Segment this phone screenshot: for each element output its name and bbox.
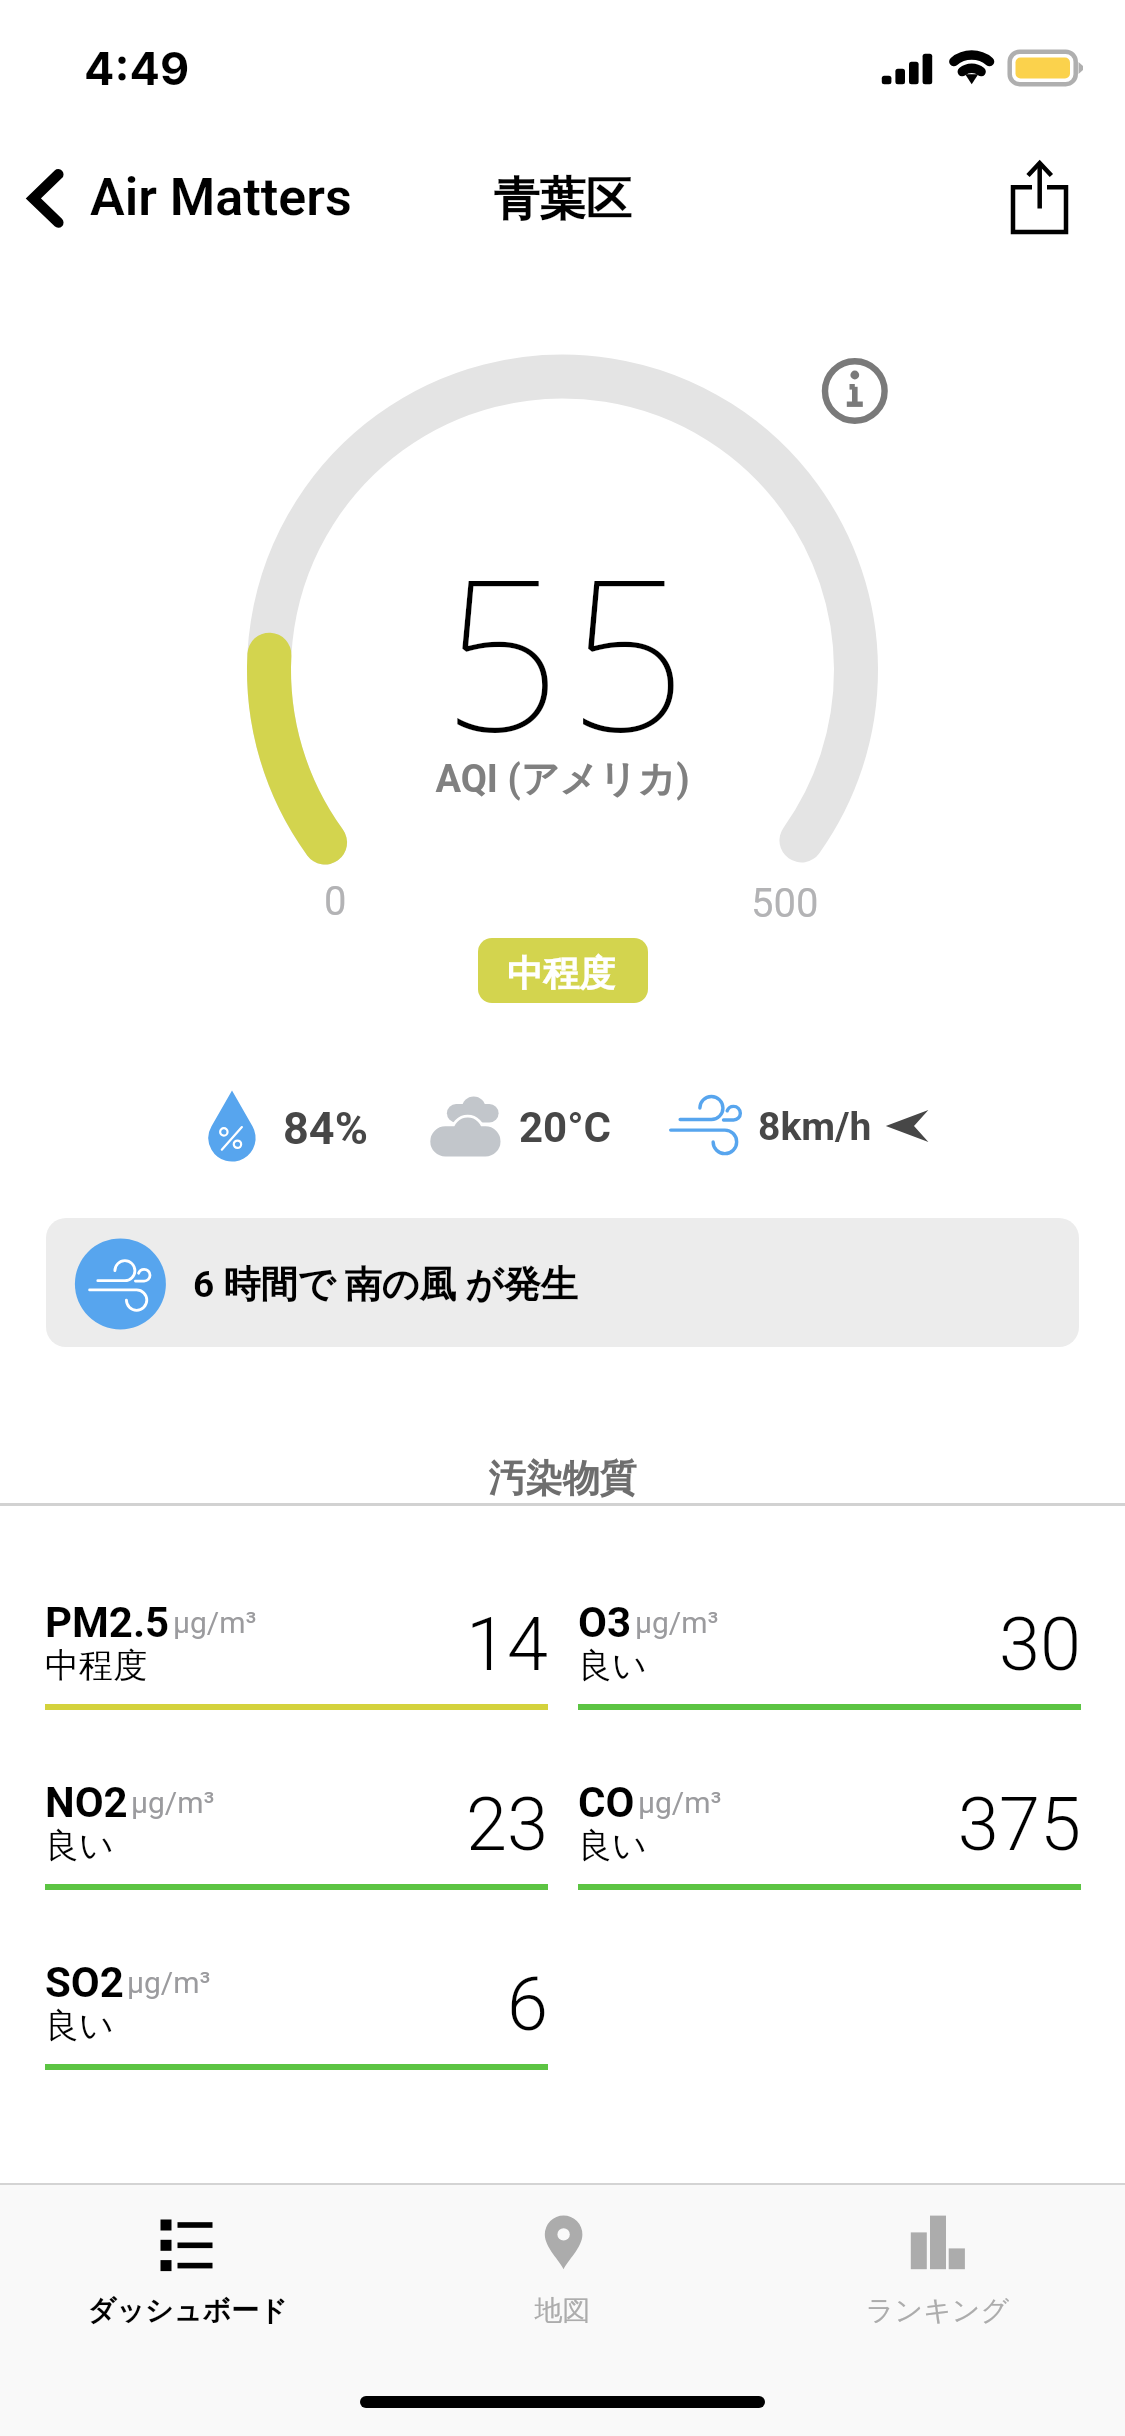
staticText: 地図: [375, 2293, 750, 2328]
button[interactable]: ダッシュボード: [0, 2190, 375, 2350]
staticText: µg/m³: [635, 1605, 719, 1640]
button[interactable]: NO2: [45, 1780, 548, 1896]
staticText: CO: [578, 1778, 635, 1827]
staticText: ダッシュボード: [0, 2293, 375, 2328]
staticText: 8km/h: [758, 1104, 872, 1150]
staticText: 23: [45, 1781, 548, 1868]
staticText: 30: [578, 1601, 1081, 1688]
button[interactable]: Share: [990, 140, 1100, 255]
staticText: 55: [5, 507, 1125, 793]
staticText: 4:49: [84, 41, 190, 95]
button[interactable]: CO: [578, 1780, 1081, 1896]
staticText: PM2.5: [45, 1598, 170, 1647]
staticText: 良い: [578, 1824, 647, 1867]
staticText: ランキング: [750, 2293, 1125, 2328]
button[interactable]: Information: [810, 345, 902, 437]
staticText: 良い: [578, 1644, 647, 1687]
staticText: 84%: [283, 1102, 368, 1155]
button[interactable]: 6 時間で 南の風 が発生: [46, 1218, 1079, 1347]
button[interactable]: O3: [578, 1600, 1081, 1716]
staticText: 14: [45, 1601, 548, 1688]
staticText: NO2: [45, 1778, 128, 1827]
staticText: 中程度: [45, 1644, 147, 1687]
staticText: 6 時間で 南の風 が発生: [193, 1261, 578, 1308]
staticText: O3: [578, 1598, 632, 1647]
staticText: 0: [324, 878, 347, 925]
staticText: 汚染物質: [0, 1455, 1125, 1502]
staticText: 20°C: [519, 1103, 612, 1152]
staticText: 良い: [45, 1824, 114, 1867]
button[interactable]: PM2.5: [45, 1600, 548, 1716]
staticText: 良い: [45, 2004, 114, 2047]
staticText: Air Matters: [90, 167, 352, 228]
staticText: µg/m³: [173, 1605, 257, 1640]
button[interactable]: Air Matters: [8, 150, 378, 250]
staticText: AQI (アメリカ): [0, 755, 1125, 803]
staticText: 青葉区: [0, 171, 1125, 229]
button[interactable]: 中程度: [478, 938, 648, 1003]
button[interactable]: 地図: [375, 2190, 750, 2350]
staticText: 中程度: [507, 951, 615, 996]
button[interactable]: ランキング: [750, 2190, 1125, 2350]
button[interactable]: SO2: [45, 1960, 548, 2076]
staticText: 500: [751, 880, 819, 927]
staticText: µg/m³: [131, 1785, 215, 1820]
staticText: SO2: [45, 1958, 124, 2007]
staticText: µg/m³: [127, 1965, 211, 2000]
staticText: 375: [578, 1781, 1081, 1868]
staticText: µg/m³: [638, 1785, 722, 1820]
staticText: 6: [45, 1961, 548, 2048]
